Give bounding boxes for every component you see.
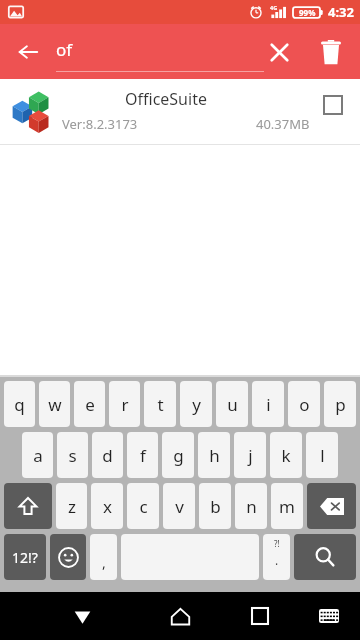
staticText: h <box>209 444 220 467</box>
button[interactable]: h <box>198 432 230 478</box>
button[interactable]: Symbols <box>4 534 46 580</box>
button[interactable]: of <box>56 32 264 72</box>
staticText: . <box>275 552 279 568</box>
button[interactable]: Search <box>294 534 356 580</box>
button[interactable]: q <box>4 381 35 427</box>
staticText: , <box>102 553 106 572</box>
staticText: f <box>140 444 146 467</box>
staticText: q <box>14 393 25 416</box>
button[interactable]: Back <box>60 594 104 638</box>
staticText: g <box>173 444 184 467</box>
button[interactable]: y <box>180 381 212 427</box>
staticText: OfficeSuite <box>125 88 207 110</box>
button[interactable]: r <box>109 381 140 427</box>
staticText: 99% <box>299 7 316 18</box>
button[interactable]: Shift <box>4 483 52 529</box>
button[interactable]: Delete <box>308 29 354 75</box>
staticText: v <box>175 495 184 518</box>
button[interactable]: n <box>235 483 267 529</box>
button[interactable]: Recent apps <box>238 594 282 638</box>
button[interactable]: t <box>144 381 176 427</box>
staticText: t <box>157 393 164 416</box>
staticText: l <box>320 444 325 467</box>
button[interactable]: l <box>306 432 338 478</box>
button[interactable]: Clear search <box>255 28 303 76</box>
button[interactable]: Backspace <box>307 483 356 529</box>
button[interactable]: f <box>127 432 158 478</box>
staticText: i <box>266 393 271 416</box>
staticText: 4:32 <box>328 3 354 21</box>
button[interactable]: Back <box>6 30 50 74</box>
button[interactable]: e <box>74 381 105 427</box>
button[interactable]: v <box>163 483 195 529</box>
staticText: r <box>121 393 129 416</box>
staticText: Ver:8.2.3173 <box>62 115 138 133</box>
staticText: p <box>335 393 346 416</box>
button[interactable]: u <box>216 381 248 427</box>
staticText: y <box>192 393 201 416</box>
button[interactable]: w <box>39 381 70 427</box>
staticText: ?! <box>274 538 280 549</box>
staticText: k <box>281 444 291 467</box>
staticText: w <box>48 393 62 416</box>
staticText: 40.37MB <box>256 115 310 133</box>
button[interactable]: k <box>270 432 302 478</box>
staticText: m <box>279 495 295 518</box>
staticText: d <box>102 444 113 467</box>
staticText: u <box>227 393 238 416</box>
button[interactable]: j <box>234 432 266 478</box>
button[interactable]: Switch keyboard <box>310 597 348 635</box>
staticText: e <box>85 393 95 416</box>
button[interactable]: x <box>91 483 123 529</box>
button[interactable]: Comma <box>90 534 117 580</box>
button[interactable]: i <box>252 381 284 427</box>
staticText: a <box>33 444 43 467</box>
staticText: b <box>210 495 221 518</box>
button[interactable]: b <box>199 483 231 529</box>
button[interactable]: z <box>56 483 87 529</box>
button[interactable]: c <box>127 483 159 529</box>
button[interactable]: s <box>57 432 88 478</box>
staticText: 12!? <box>12 548 38 567</box>
button[interactable]: m <box>271 483 303 529</box>
button[interactable]: o <box>288 381 320 427</box>
button[interactable]: Emoji <box>50 534 86 580</box>
staticText: c <box>139 495 148 518</box>
staticText: o <box>299 393 310 416</box>
button[interactable]: d <box>92 432 123 478</box>
staticText: x <box>103 495 112 518</box>
staticText: n <box>246 495 257 518</box>
button[interactable]: OfficeSuite <box>0 79 360 145</box>
button[interactable]: p <box>324 381 356 427</box>
button[interactable]: a <box>22 432 53 478</box>
button[interactable]: Home <box>158 594 202 638</box>
button[interactable]: g <box>162 432 194 478</box>
staticText: j <box>248 444 253 467</box>
staticText: 4G <box>270 4 278 11</box>
staticText: of <box>56 38 73 61</box>
staticText: z <box>68 495 76 518</box>
button[interactable]: Punctuation <box>263 534 290 580</box>
button[interactable]: Select OfficeSuite <box>316 95 350 129</box>
staticText: s <box>68 444 77 467</box>
